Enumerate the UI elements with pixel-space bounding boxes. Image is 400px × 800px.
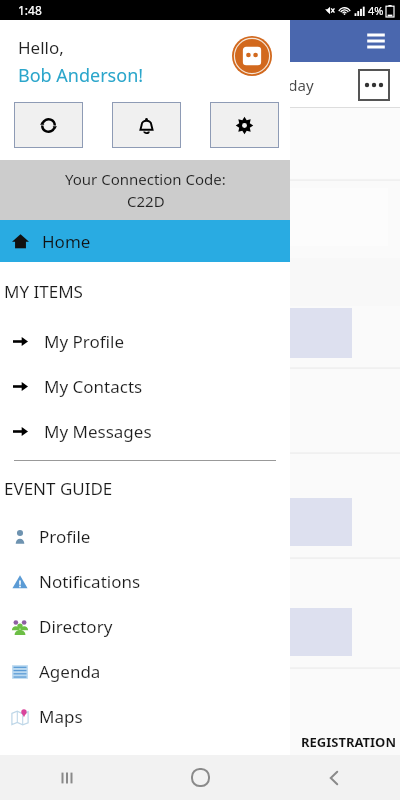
staticText: My Profile [44, 330, 124, 353]
button[interactable]: Home [0, 220, 290, 262]
button[interactable]: My Contacts [0, 364, 290, 409]
staticText: REGISTRATION [301, 733, 396, 751]
button[interactable]: Notifications [112, 102, 181, 148]
button[interactable]: Menu [360, 25, 392, 57]
staticText: Profile [39, 525, 91, 548]
staticText: My Messages [44, 420, 152, 443]
staticText: 1:48 [18, 2, 42, 18]
staticText: My Contacts [44, 375, 143, 398]
staticText: Your Connection Code: [65, 169, 226, 189]
staticText: Bob Anderson! [18, 63, 144, 88]
button[interactable]: Profile [0, 514, 290, 559]
button[interactable]: Notifications [0, 559, 290, 604]
button[interactable]: Profile avatar [232, 36, 272, 76]
staticText: Hello, [18, 36, 64, 59]
button[interactable]: Your Connection Code: [0, 160, 290, 220]
staticText: Agenda [39, 660, 101, 683]
button[interactable]: My Profile [0, 319, 290, 364]
staticText: EVENT GUIDE [4, 477, 113, 500]
button[interactable]: Back [267, 755, 400, 800]
staticText: lts [318, 769, 336, 788]
staticText: MY ITEMS [4, 280, 83, 303]
button[interactable]: Refresh [14, 102, 83, 148]
staticText: Directory [39, 615, 113, 638]
button[interactable]: My Messages [0, 409, 290, 454]
staticText: 4% [368, 3, 384, 18]
staticText: C22D [127, 191, 165, 211]
button[interactable]: Recent apps [0, 755, 134, 800]
staticText: Home [42, 230, 91, 253]
button[interactable]: More options [358, 69, 390, 101]
staticText: Today [272, 75, 314, 95]
button[interactable]: Home [134, 755, 267, 800]
button[interactable]: Maps [0, 694, 290, 739]
button[interactable]: Settings [210, 102, 279, 148]
button[interactable]: Directory [0, 604, 290, 649]
staticText: Maps [39, 705, 83, 728]
button[interactable]: Agenda [0, 649, 290, 694]
staticText: & EVENT APP [313, 751, 396, 769]
staticText: Notifications [39, 570, 141, 593]
